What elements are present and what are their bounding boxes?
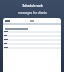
staticText: Schedule web — [22, 4, 43, 8]
button[interactable] — [3, 39, 61, 41]
button[interactable] — [3, 47, 61, 49]
button[interactable] — [3, 43, 61, 45]
staticText: messages for clients — [18, 11, 47, 15]
button[interactable] — [3, 31, 61, 33]
button[interactable] — [3, 35, 61, 37]
